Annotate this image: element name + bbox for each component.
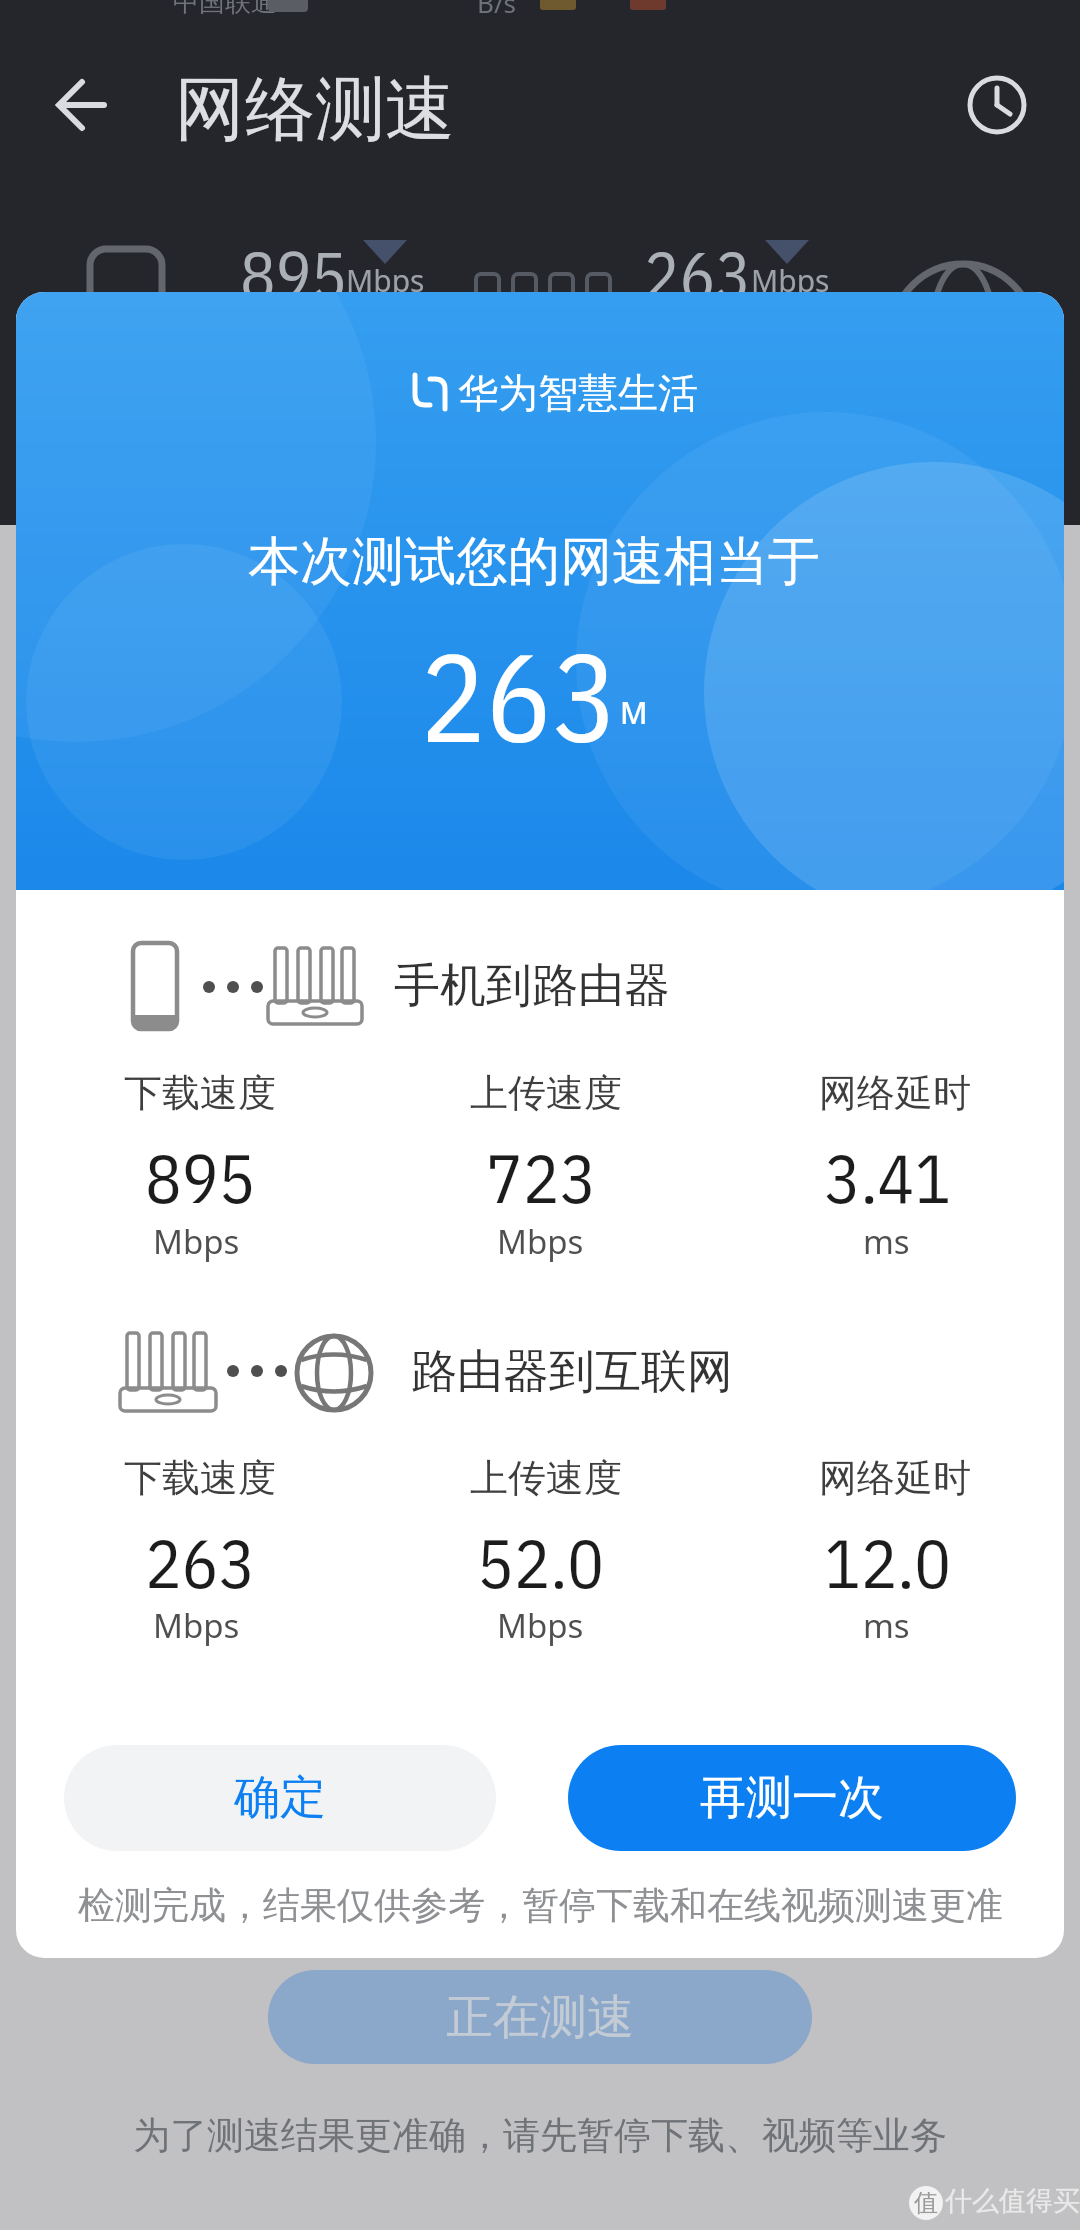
staticText: 下载速度 — [124, 1069, 276, 1117]
staticText: 网络测速 — [175, 66, 455, 154]
staticText: 下载速度 — [124, 1454, 276, 1502]
staticText: Mbps — [153, 1219, 240, 1264]
staticText: 再测一次 — [700, 1769, 884, 1827]
staticText: 确定 — [234, 1769, 326, 1827]
staticText: 895 — [240, 231, 347, 317]
staticText: 52.0 — [477, 1518, 605, 1606]
staticText: 上传速度 — [470, 1069, 622, 1117]
staticText: 263 — [644, 231, 751, 317]
staticText: Mbps — [497, 1603, 584, 1648]
staticText: 895 — [145, 1133, 256, 1221]
staticText: 值 — [914, 2188, 938, 2218]
staticText: 本次测试您的网速相当于 — [248, 529, 820, 595]
button[interactable] — [40, 70, 120, 140]
staticText: 网络延时 — [819, 1069, 971, 1117]
staticText: 路由器到互联网 — [411, 1343, 733, 1401]
staticText: 手机到路由器 — [394, 957, 670, 1015]
staticText: 3.41 — [824, 1133, 952, 1221]
staticText: Mbps — [751, 260, 830, 301]
staticText: ms — [863, 1219, 910, 1264]
staticText: 263 — [145, 1518, 256, 1606]
staticText: 正在测速 — [446, 1988, 634, 2047]
staticText: 为了测速结果更准确，请先暂停下载、视频等业务 — [133, 2112, 947, 2159]
staticText: 263 — [420, 617, 618, 776]
staticText: Mbps — [346, 260, 425, 301]
staticText: 什么值得买 — [945, 2184, 1080, 2218]
button[interactable] — [962, 70, 1032, 140]
staticText: 12.0 — [824, 1518, 952, 1606]
staticText: B/s — [477, 0, 517, 20]
staticText: 723 — [486, 1133, 597, 1221]
staticText: M — [620, 692, 648, 733]
staticText: ms — [863, 1603, 910, 1648]
staticText: 网络延时 — [819, 1454, 971, 1502]
staticText: 中国联通 — [173, 0, 277, 19]
staticText: 检测完成，结果仅供参考，暂停下载和在线视频测速更准 — [78, 1882, 1003, 1929]
button[interactable]: 确定 — [64, 1745, 496, 1851]
button[interactable]: 再测一次 — [568, 1745, 1016, 1851]
staticText: 上传速度 — [470, 1454, 622, 1502]
button[interactable]: 正在测速 — [268, 1970, 812, 2064]
staticText: Mbps — [153, 1603, 240, 1648]
staticText: 华为智慧生活 — [458, 368, 698, 418]
staticText: Mbps — [497, 1219, 584, 1264]
